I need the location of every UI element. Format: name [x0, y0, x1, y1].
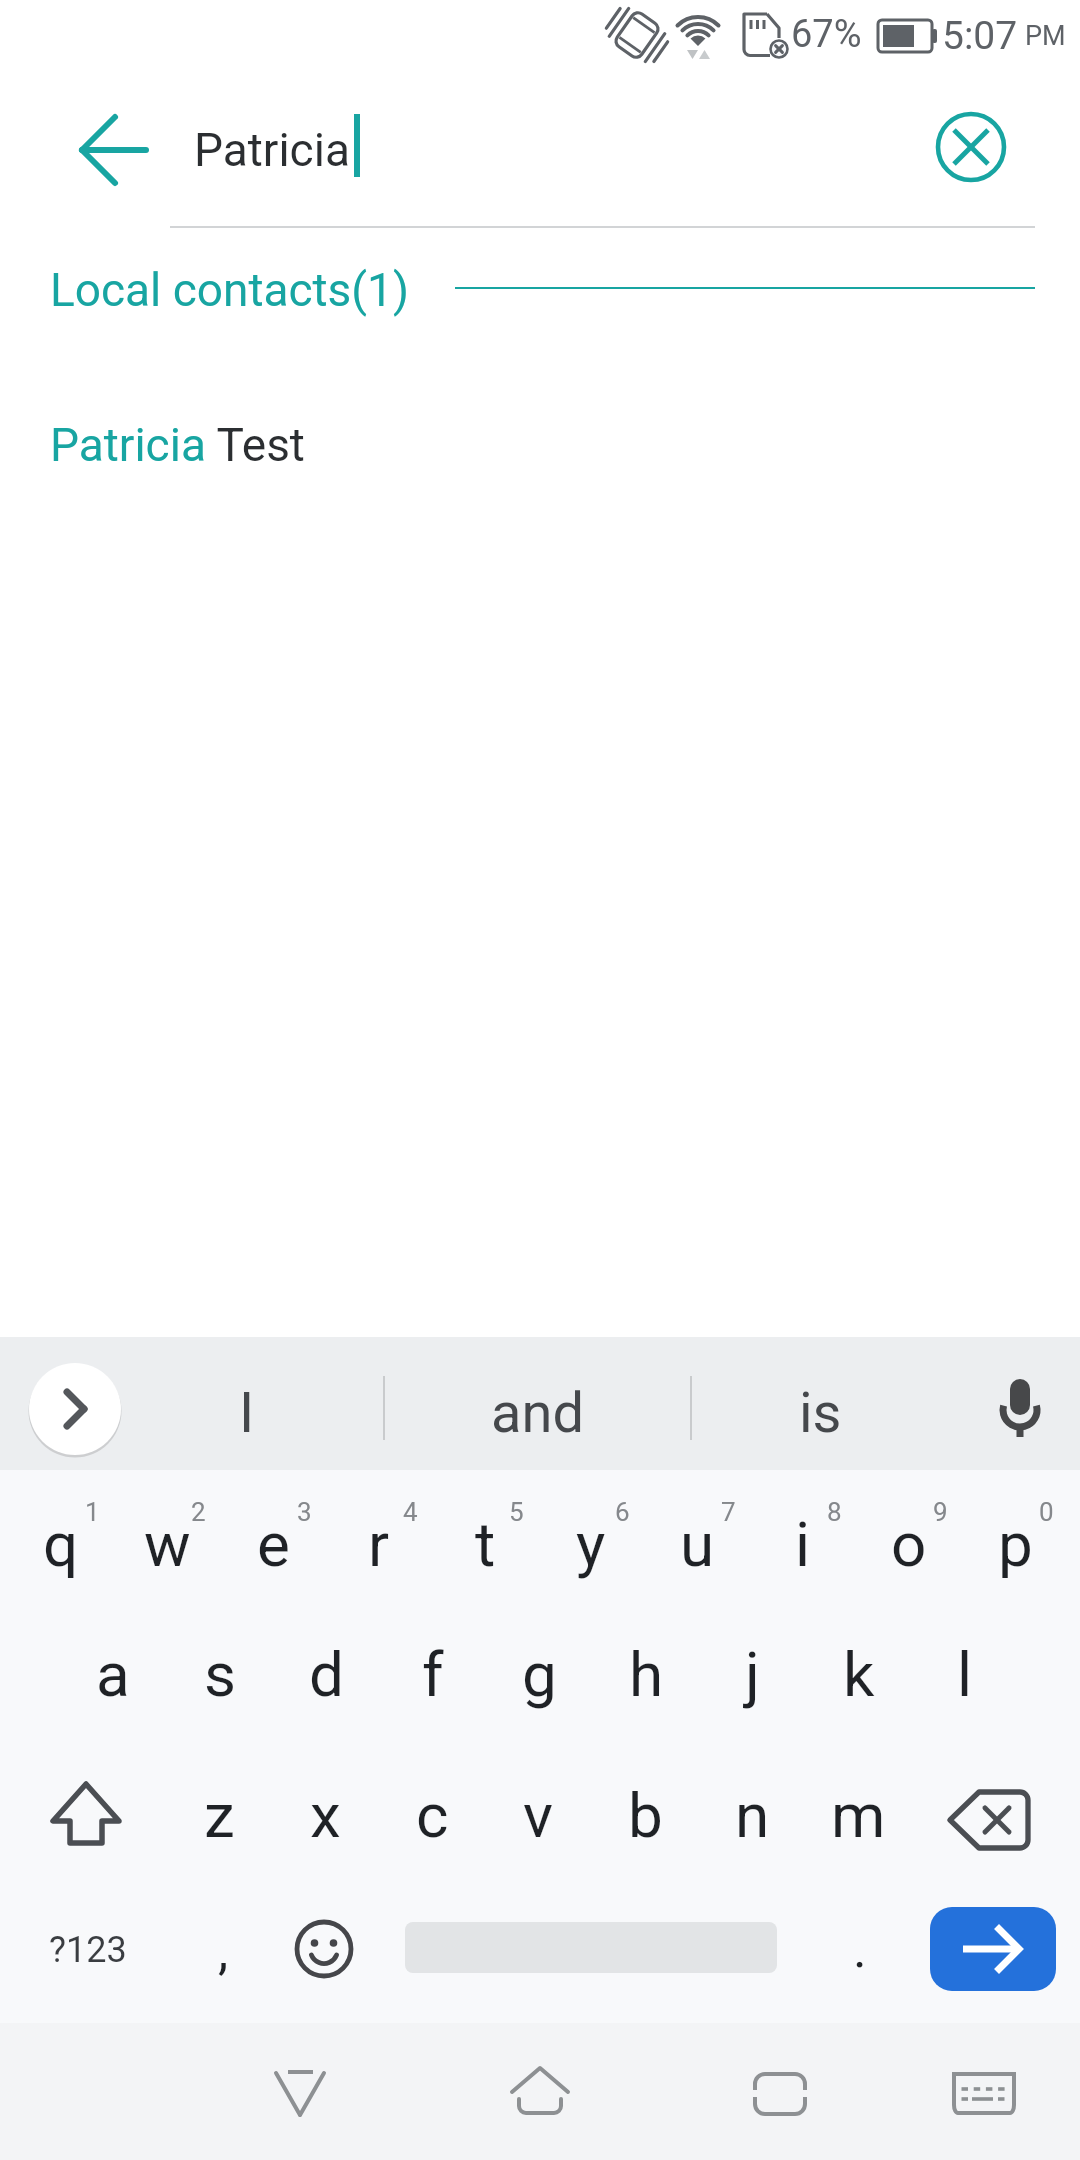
- button[interactable]: [930, 1907, 1056, 1991]
- staticText: Test: [206, 418, 305, 472]
- button[interactable]: and: [407, 1353, 667, 1473]
- staticText: q: [43, 1508, 79, 1581]
- staticText: w: [144, 1508, 191, 1581]
- staticText: .: [853, 1919, 867, 1980]
- button[interactable]: [721, 2035, 839, 2153]
- button[interactable]: y: [539, 1481, 643, 1607]
- staticText: 67%: [791, 12, 862, 57]
- button[interactable]: ,: [178, 1901, 268, 2001]
- button[interactable]: w: [115, 1481, 219, 1607]
- button[interactable]: e: [221, 1481, 325, 1607]
- button[interactable]: j: [700, 1611, 804, 1737]
- button[interactable]: k: [807, 1611, 911, 1737]
- staticText: r: [368, 1508, 390, 1581]
- button[interactable]: [938, 1770, 1050, 1870]
- button[interactable]: [972, 1360, 1068, 1458]
- staticText: v: [523, 1779, 554, 1852]
- staticText: 2: [191, 1497, 206, 1527]
- staticText: g: [522, 1638, 557, 1711]
- button[interactable]: is: [710, 1353, 930, 1473]
- button[interactable]: n: [700, 1752, 804, 1878]
- button[interactable]: r: [327, 1481, 431, 1607]
- button[interactable]: ?123: [28, 1900, 148, 2000]
- staticText: 4: [403, 1497, 418, 1527]
- button[interactable]: c: [380, 1752, 484, 1878]
- button[interactable]: i: [751, 1481, 855, 1607]
- button[interactable]: s: [168, 1611, 272, 1737]
- staticText: k: [843, 1638, 875, 1711]
- button[interactable]: l: [913, 1611, 1017, 1737]
- button[interactable]: [240, 2035, 358, 2153]
- staticText: PM: [1025, 20, 1066, 52]
- button[interactable]: .: [815, 1899, 905, 1999]
- staticText: ,: [218, 1921, 229, 1982]
- staticText: n: [735, 1779, 770, 1852]
- staticText: h: [629, 1638, 664, 1711]
- button[interactable]: [50, 100, 170, 200]
- staticText: 1: [85, 1497, 100, 1527]
- button[interactable]: a: [61, 1611, 165, 1737]
- staticText: 7: [721, 1497, 736, 1527]
- button[interactable]: b: [593, 1752, 697, 1878]
- button[interactable]: [22, 1356, 128, 1462]
- staticText: m: [831, 1779, 886, 1852]
- staticText: Local contacts(1): [50, 263, 409, 317]
- staticText: 0: [1039, 1497, 1054, 1527]
- staticText: z: [204, 1779, 235, 1852]
- staticText: 9: [933, 1497, 948, 1527]
- staticText: x: [310, 1779, 341, 1852]
- staticText: and: [491, 1380, 584, 1446]
- staticText: s: [204, 1638, 236, 1711]
- staticText: o: [891, 1508, 927, 1581]
- staticText: p: [998, 1508, 1033, 1581]
- staticText: e: [257, 1508, 290, 1581]
- staticText: 3: [297, 1497, 312, 1527]
- staticText: 8: [827, 1497, 842, 1527]
- button[interactable]: x: [273, 1752, 377, 1878]
- button[interactable]: f: [381, 1611, 485, 1737]
- staticText: I: [239, 1380, 255, 1446]
- button[interactable]: d: [274, 1611, 378, 1737]
- button[interactable]: m: [806, 1752, 910, 1878]
- button[interactable]: v: [486, 1752, 590, 1878]
- button[interactable]: t: [433, 1481, 537, 1607]
- button[interactable]: [481, 2035, 599, 2153]
- staticText: ?123: [49, 1929, 127, 1971]
- staticText: t: [475, 1508, 496, 1581]
- staticText: i: [795, 1508, 811, 1581]
- staticText: u: [680, 1508, 715, 1581]
- staticText: Patricia: [194, 123, 350, 177]
- button[interactable]: p: [963, 1481, 1067, 1607]
- staticText: 6: [615, 1497, 630, 1527]
- staticText: Patricia: [50, 418, 206, 472]
- button[interactable]: I: [137, 1353, 357, 1473]
- button[interactable]: [30, 1768, 142, 1870]
- staticText: 5:07: [942, 13, 1018, 59]
- button[interactable]: u: [645, 1481, 749, 1607]
- staticText: a: [96, 1638, 130, 1711]
- staticText: is: [799, 1380, 842, 1446]
- button[interactable]: q: [9, 1481, 113, 1607]
- button[interactable]: h: [594, 1611, 698, 1737]
- button[interactable]: o: [857, 1481, 961, 1607]
- staticText: c: [416, 1779, 449, 1852]
- button[interactable]: [274, 1899, 374, 1999]
- staticText: b: [628, 1779, 663, 1852]
- button[interactable]: g: [487, 1611, 591, 1737]
- staticText: f: [422, 1638, 444, 1711]
- button[interactable]: [928, 104, 1014, 190]
- button[interactable]: Patricia: [0, 390, 1080, 500]
- staticText: 5: [509, 1497, 524, 1527]
- staticText: l: [957, 1638, 973, 1711]
- staticText: j: [745, 1638, 760, 1711]
- button[interactable]: z: [167, 1752, 271, 1878]
- staticText: y: [576, 1508, 606, 1581]
- staticText: d: [309, 1638, 344, 1711]
- button[interactable]: [925, 2035, 1043, 2153]
